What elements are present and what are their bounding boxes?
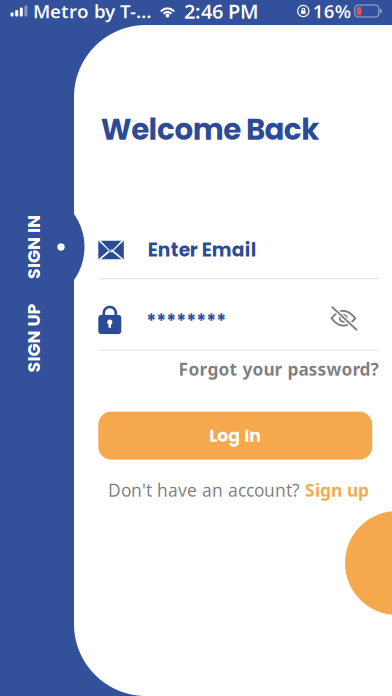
staticText: Don't have an account? [108,478,305,501]
button[interactable]: Log In [98,412,372,460]
button[interactable]: Forgot your password? [98,358,379,380]
staticText: ******** [146,308,226,334]
staticText: Log In [209,423,261,448]
staticText: SIGN IN [2,235,66,259]
button[interactable]: Sign up [305,478,369,501]
staticText: Welcome Back [101,109,319,150]
button[interactable]: SIGN UP [4,295,64,381]
staticText: 2:46 PM [184,0,259,24]
staticText: 16% [313,0,351,23]
staticText: Enter Email [148,237,257,263]
staticText: Forgot your password? [179,357,379,380]
staticText: SIGN UP [0,326,68,350]
staticText: Metro by T-… [33,0,152,23]
button[interactable]: Show password [330,308,357,329]
button[interactable]: SIGN IN [4,204,64,290]
staticText: Sign up [305,478,369,501]
